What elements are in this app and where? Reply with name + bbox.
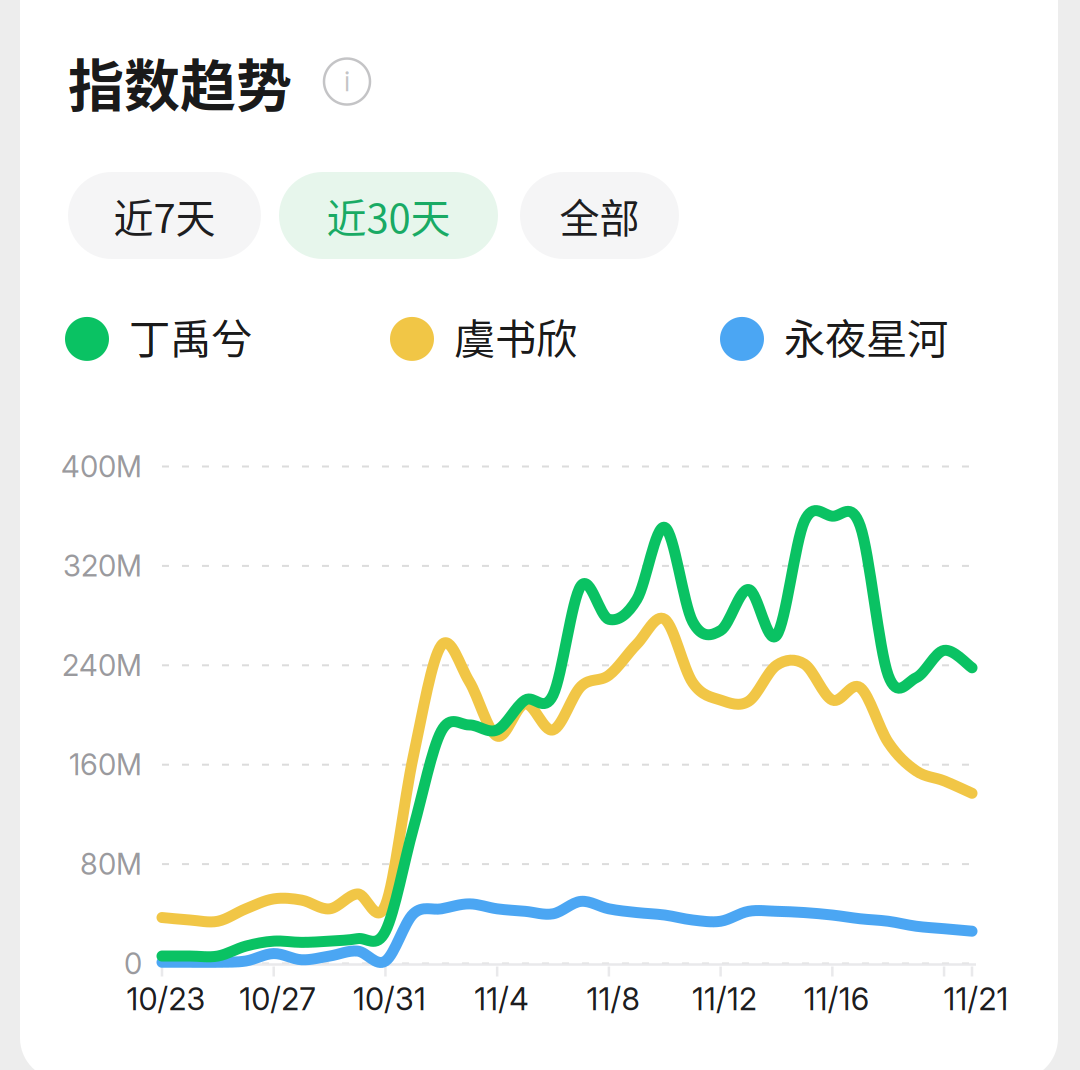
staticText: 11/21 (943, 980, 1008, 1017)
staticText: 11/8 (586, 980, 639, 1017)
staticText: 11/16 (804, 980, 869, 1017)
staticText: 400M (61, 449, 142, 484)
staticText: 全部 (559, 186, 639, 244)
staticText: 11/4 (474, 980, 528, 1017)
button[interactable]: 近7天 (68, 172, 261, 259)
staticText: 近30天 (326, 186, 450, 244)
staticText: 近7天 (113, 186, 215, 244)
staticText: 11/12 (692, 980, 757, 1017)
staticText: 10/27 (239, 980, 316, 1017)
staticText: 10/23 (126, 980, 205, 1017)
button[interactable]: 说明 (324, 58, 370, 104)
staticText: 丁禹兮 (129, 306, 252, 366)
staticText: 指数趋势 (68, 41, 292, 122)
staticText: i (344, 65, 350, 98)
staticText: 永夜星河 (784, 306, 948, 366)
staticText: 10/31 (353, 980, 426, 1017)
staticText: 80M (80, 846, 142, 882)
staticText: 虞书欣 (454, 306, 577, 366)
button[interactable]: 全部 (520, 172, 679, 259)
staticText: 320M (63, 548, 142, 584)
button[interactable]: 近30天 (279, 172, 498, 259)
staticText: 240M (62, 648, 142, 683)
staticText: 0 (124, 946, 142, 981)
staticText: 160M (69, 747, 142, 782)
